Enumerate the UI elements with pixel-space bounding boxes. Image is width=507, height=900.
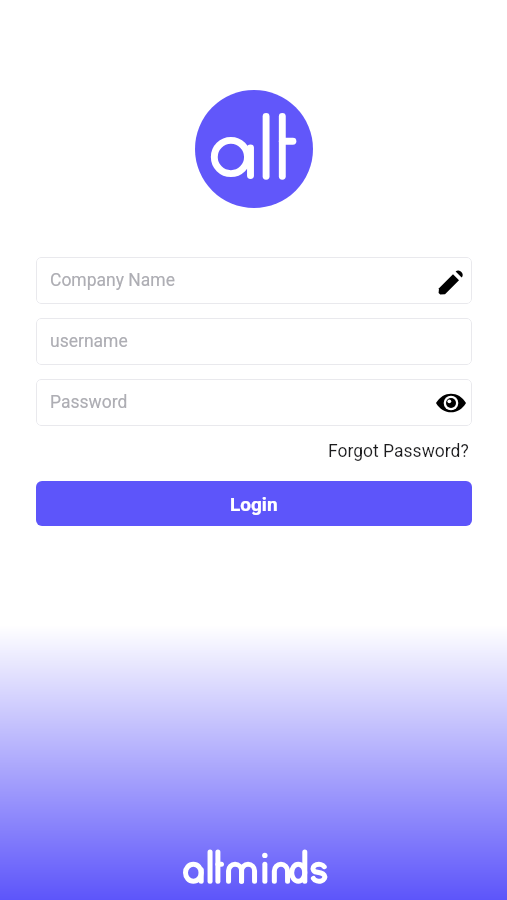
button[interactable]: Company Name bbox=[36, 257, 472, 304]
button[interactable]: Forgot Password? bbox=[325, 436, 472, 467]
button[interactable]: Edit company name bbox=[435, 265, 467, 297]
button[interactable]: Show password bbox=[435, 387, 467, 419]
button[interactable]: username bbox=[36, 318, 472, 365]
button[interactable]: Password bbox=[36, 379, 472, 426]
staticText: Password bbox=[50, 392, 435, 413]
staticText: username bbox=[50, 331, 467, 352]
staticText: Company Name bbox=[50, 270, 435, 291]
button[interactable]: Login bbox=[36, 481, 472, 526]
staticText: Login bbox=[230, 493, 278, 515]
